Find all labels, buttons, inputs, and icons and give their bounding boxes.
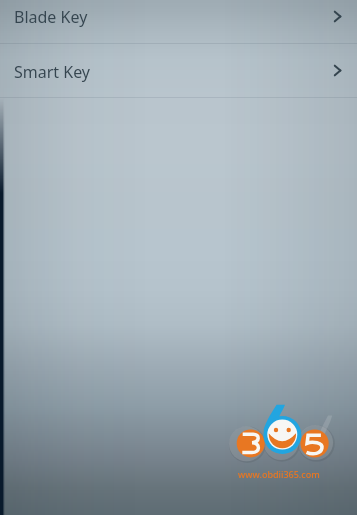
staticText: Blade Key bbox=[14, 6, 88, 28]
staticText: www.obdii365.com bbox=[238, 468, 320, 480]
button[interactable]: Smart Key bbox=[0, 44, 357, 97]
staticText: Smart Key bbox=[14, 61, 91, 83]
button[interactable]: Blade Key bbox=[0, 0, 357, 43]
